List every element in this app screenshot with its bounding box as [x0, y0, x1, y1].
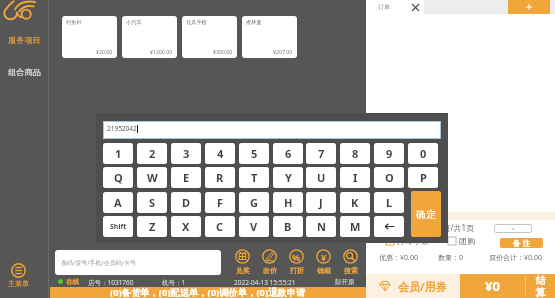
staticText: M: [350, 219, 361, 234]
staticText: ¥300.00: [213, 48, 233, 55]
staticText: 3: [183, 146, 190, 161]
staticText: 改价: [263, 266, 277, 275]
staticText: Z: [149, 219, 156, 234]
button[interactable]: K: [340, 192, 370, 213]
button[interactable]: New order: [508, 0, 550, 14]
button[interactable]: 0: [408, 143, 438, 164]
staticText: 9: [386, 146, 393, 161]
button[interactable]: O: [374, 167, 404, 188]
button[interactable]: M: [340, 216, 370, 237]
staticText: 1: [115, 146, 122, 161]
button[interactable]: 搜索: [337, 249, 364, 275]
button[interactable]: ¥: [310, 249, 337, 275]
button[interactable]: 7: [306, 143, 336, 164]
staticText: 优惠：¥0.00: [379, 253, 418, 263]
button[interactable]: R: [205, 167, 235, 188]
staticText: C: [216, 219, 224, 234]
staticText: 在线: [66, 278, 79, 286]
button[interactable]: H: [273, 192, 303, 213]
button[interactable]: N: [306, 216, 336, 237]
staticText: 会员/用券: [398, 279, 447, 294]
staticText: I: [353, 170, 358, 185]
staticText: 小汽车: [126, 19, 142, 26]
button[interactable]: 服务项目: [0, 30, 48, 50]
button[interactable]: Z: [137, 216, 167, 237]
button[interactable]: Y: [273, 167, 303, 188]
button[interactable]: V: [239, 216, 269, 237]
button[interactable]: %: [283, 249, 310, 275]
staticText: 结算: [535, 274, 546, 298]
staticText: 第1页/共1页: [430, 222, 475, 233]
button[interactable]: 确定: [411, 191, 441, 237]
button[interactable]: [374, 216, 404, 237]
button[interactable]: E: [171, 167, 201, 188]
button[interactable]: 团购: [448, 236, 475, 246]
staticText: 主菜单: [8, 279, 29, 288]
button[interactable]: 1: [103, 143, 133, 164]
button[interactable]: 订单: [366, 0, 424, 14]
staticText: T: [251, 170, 258, 185]
button[interactable]: P: [408, 167, 438, 188]
button[interactable]: 钓鱼杆: [62, 16, 117, 58]
button[interactable]: I: [340, 167, 370, 188]
button[interactable]: W: [137, 167, 167, 188]
staticText: ¥20.00: [96, 48, 113, 55]
staticText: ¥207.00: [273, 48, 293, 55]
button[interactable]: 8: [340, 143, 370, 164]
button[interactable]: 会员/用券: [366, 274, 460, 298]
button[interactable]: Shift: [103, 216, 133, 237]
button[interactable]: J: [306, 192, 336, 213]
staticText: 备 注: [513, 238, 530, 248]
staticText: R: [216, 170, 224, 185]
staticText: 兑奖: [236, 266, 250, 275]
button[interactable]: 玩具手枪: [182, 16, 237, 58]
staticText: 6: [285, 146, 292, 161]
button[interactable]: 兑奖: [229, 249, 256, 275]
button[interactable]: 小汽车: [122, 16, 177, 58]
staticText: 订单: [378, 3, 390, 11]
staticText: X: [182, 219, 190, 234]
button[interactable]: Q: [103, 167, 133, 188]
button[interactable]: G: [239, 192, 269, 213]
button[interactable]: 条码/货号/手机/会员码/卡号: [55, 250, 221, 275]
staticText: 钓鱼杆: [66, 19, 82, 26]
button[interactable]: B: [273, 216, 303, 237]
button[interactable]: L: [374, 192, 404, 213]
button[interactable]: 21952042: [107, 121, 437, 139]
button[interactable]: 5: [239, 143, 269, 164]
staticText: Q: [114, 170, 123, 185]
button[interactable]: 3: [171, 143, 201, 164]
staticText: A: [114, 195, 122, 210]
button[interactable]: T: [239, 167, 269, 188]
button[interactable]: 改价: [256, 249, 283, 275]
button[interactable]: [494, 224, 532, 233]
button[interactable]: 2: [137, 143, 167, 164]
staticText: Y: [285, 170, 292, 185]
staticText: 团购: [459, 236, 475, 246]
staticText: W: [147, 170, 158, 185]
button[interactable]: 4: [205, 143, 235, 164]
staticText: S: [149, 195, 156, 210]
button[interactable]: 6: [273, 143, 303, 164]
staticText: ¥: [321, 251, 327, 263]
button[interactable]: (0)备货单，(0)配送单，(0)调价单，(0)退款申请: [50, 287, 366, 298]
button[interactable]: X: [171, 216, 201, 237]
staticText: F: [217, 195, 224, 210]
button[interactable]: Close tab: [409, 1, 422, 14]
button[interactable]: ¥0: [460, 274, 555, 298]
button[interactable]: 煮林曼: [242, 16, 297, 58]
button[interactable]: F: [205, 192, 235, 213]
button[interactable]: C: [205, 216, 235, 237]
button[interactable]: 组合商品: [0, 62, 48, 82]
button[interactable]: D: [171, 192, 201, 213]
button[interactable]: U: [306, 167, 336, 188]
staticText: 7: [318, 146, 325, 161]
button[interactable]: 打印小票: [386, 236, 429, 246]
button[interactable]: 9: [374, 143, 404, 164]
staticText: 组合商品: [8, 67, 41, 77]
button[interactable]: S: [137, 192, 167, 213]
button[interactable]: 主菜单: [1, 263, 35, 298]
staticText: 服务项目: [8, 35, 41, 45]
button[interactable]: A: [103, 192, 133, 213]
button[interactable]: 备 注: [500, 238, 543, 248]
